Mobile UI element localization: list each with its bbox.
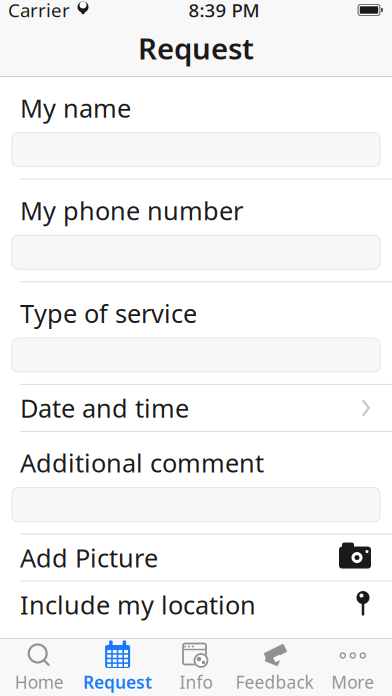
staticText: Carrier: [8, 0, 70, 22]
staticText: More: [331, 670, 374, 693]
button[interactable]: Home: [0, 639, 78, 696]
staticText: My name: [20, 91, 131, 125]
staticText: Additional comment: [20, 446, 264, 479]
staticText: Request: [83, 670, 152, 693]
staticText: Include my location: [20, 588, 256, 621]
button[interactable]: Add Picture: [0, 535, 392, 582]
staticText: Type of service: [20, 296, 197, 330]
button[interactable]: Request: [78, 639, 157, 696]
button[interactable]: More: [314, 639, 392, 696]
staticText: Feedback: [235, 670, 313, 693]
staticText: My phone number: [20, 194, 243, 227]
button[interactable]: Include my location: [0, 582, 392, 628]
staticText: Request: [138, 28, 254, 67]
button[interactable]: Date and time: [0, 385, 392, 432]
staticText: Date and time: [20, 391, 189, 425]
staticText: Info: [179, 670, 212, 693]
staticText: Add Picture: [20, 541, 158, 574]
staticText: 8:39 PM: [188, 0, 259, 22]
button[interactable]: Info: [157, 639, 235, 696]
staticText: Home: [15, 670, 64, 693]
button[interactable]: Feedback: [235, 639, 314, 696]
